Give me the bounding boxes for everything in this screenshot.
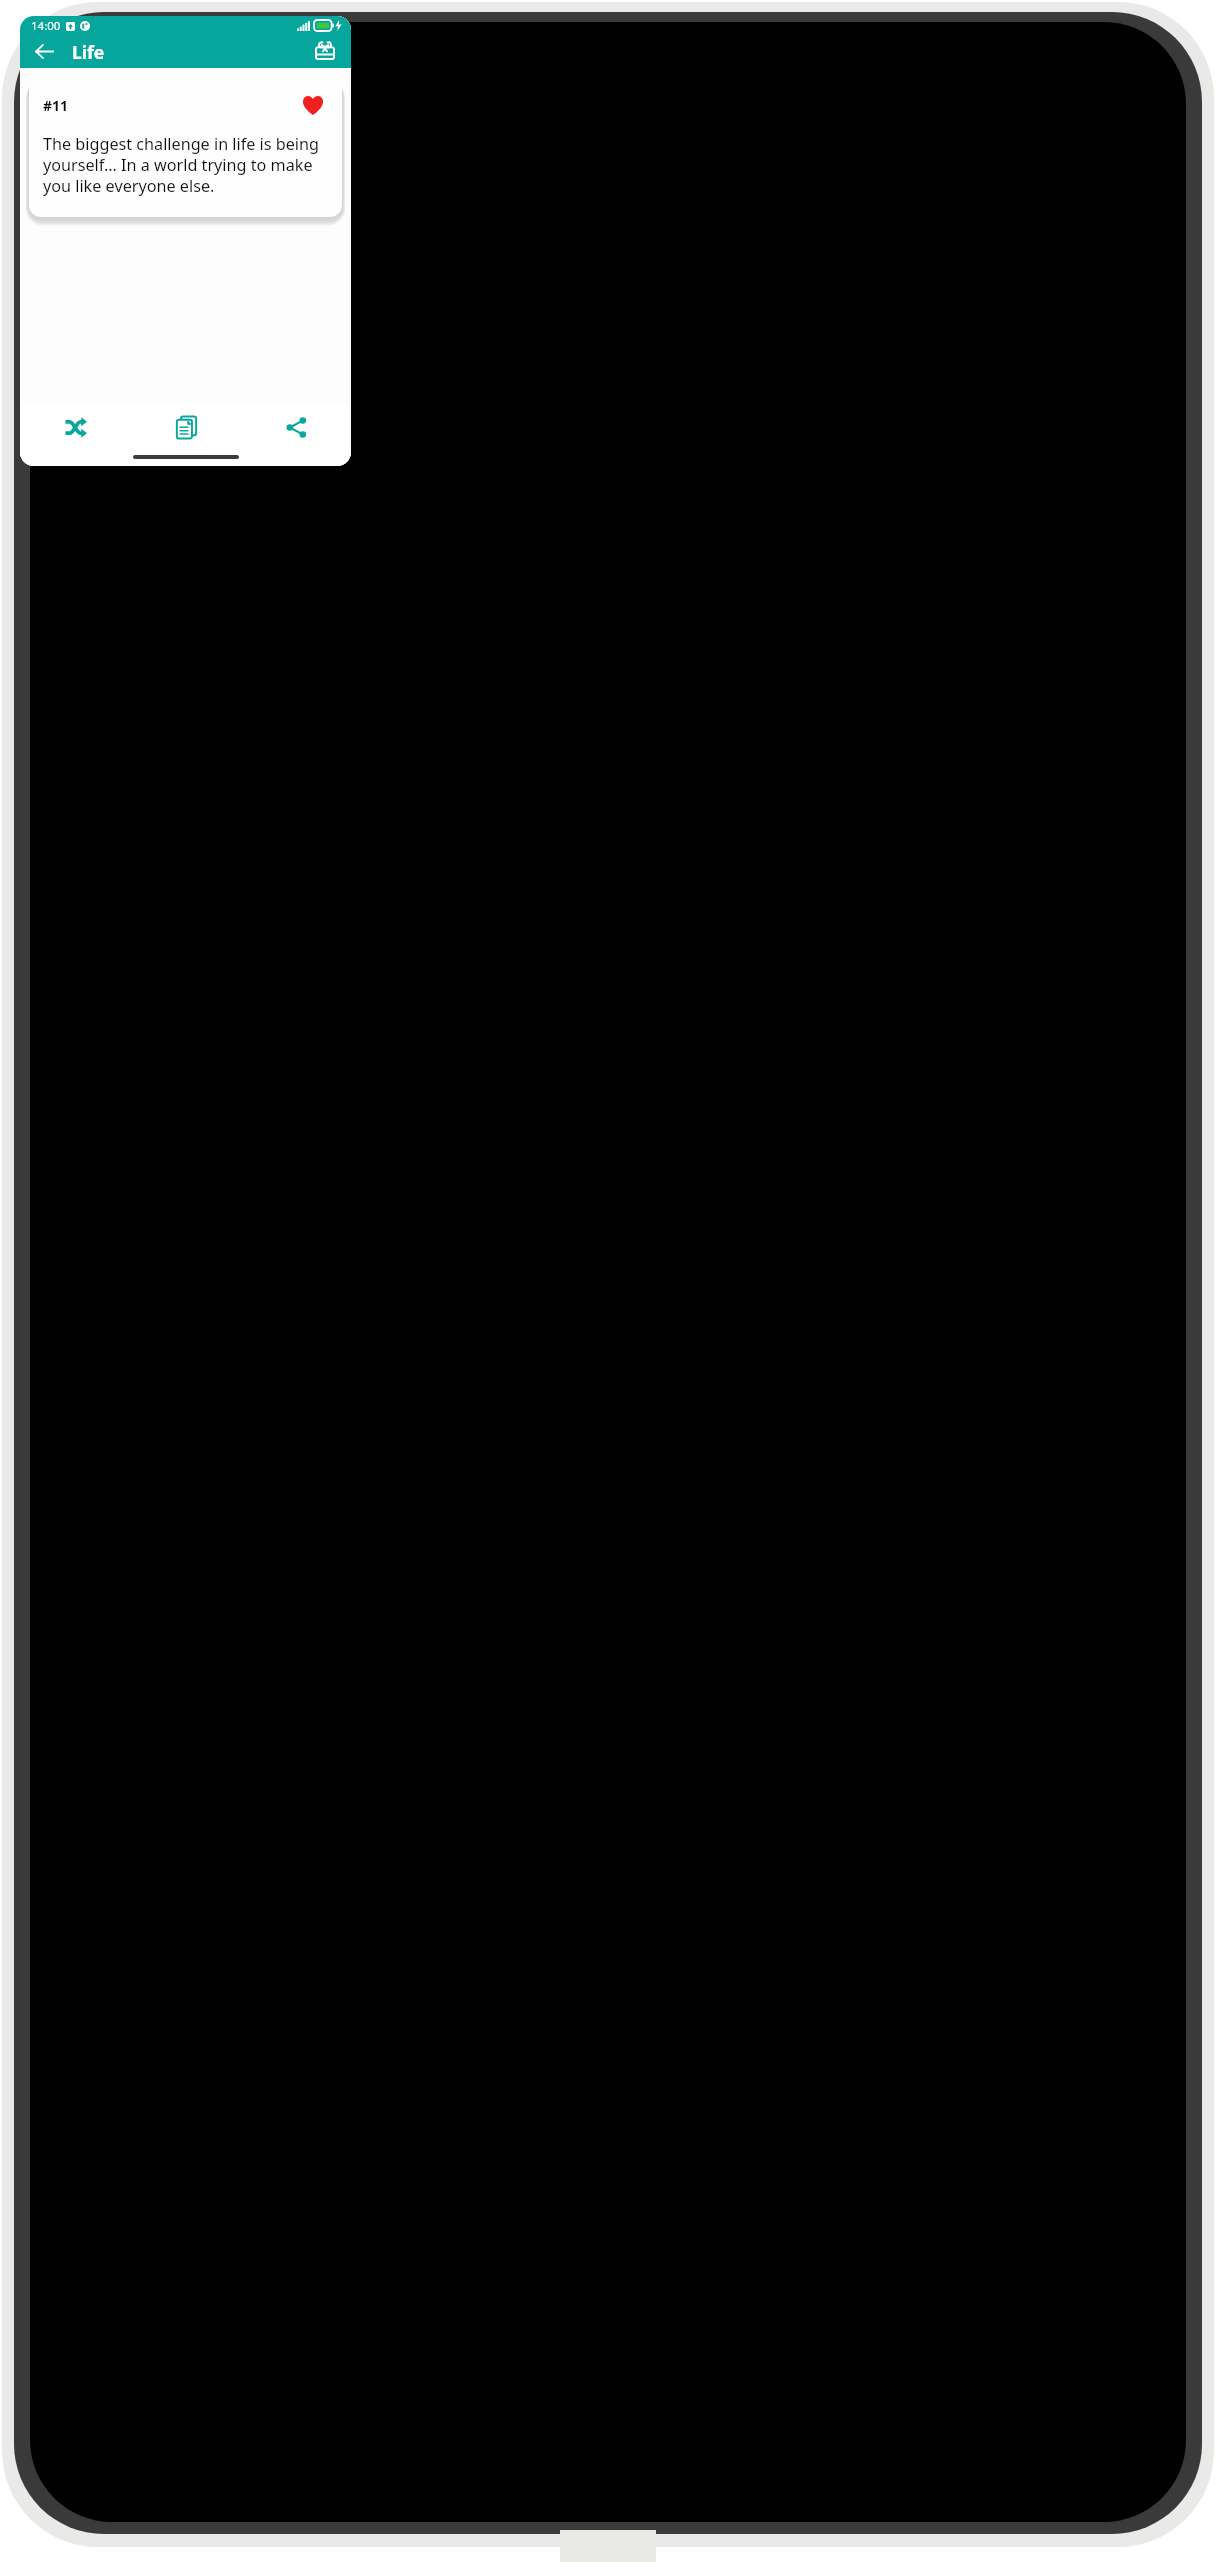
staticText: 14:00 (31, 18, 61, 34)
button[interactable]: Copy (131, 406, 241, 448)
button[interactable]: Shuffle (20, 406, 131, 448)
button[interactable]: Share (241, 406, 351, 448)
button[interactable]: #11 (29, 78, 342, 217)
staticText: Life (72, 40, 105, 64)
button[interactable]: Favorite (298, 90, 328, 120)
staticText: #11 (43, 96, 69, 115)
staticText: The biggest challenge in life is being y… (43, 133, 328, 197)
button[interactable]: Back (26, 35, 62, 68)
button[interactable]: Gift (307, 35, 343, 68)
